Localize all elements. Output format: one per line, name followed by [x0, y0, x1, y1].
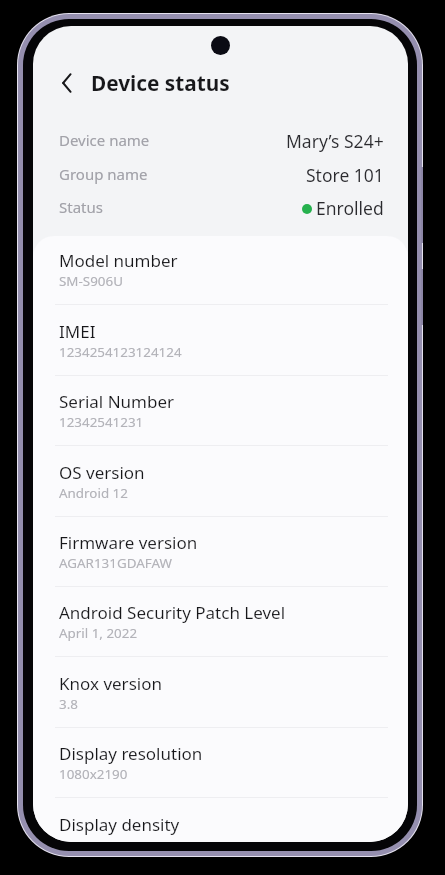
staticText: Serial Number [59, 390, 175, 413]
button[interactable]: IMEI [33, 320, 408, 390]
staticText: Store 101 [306, 163, 384, 187]
staticText: Device name [59, 130, 150, 150]
button[interactable]: Status [33, 193, 408, 221]
button[interactable]: Display density [33, 813, 408, 842]
button[interactable]: Serial Number [33, 390, 408, 460]
button[interactable]: Android Security Patch Level [33, 601, 408, 671]
staticText: Android Security Patch Level [59, 601, 286, 624]
staticText: Display resolution [59, 742, 203, 765]
staticText: Display density [59, 813, 180, 836]
staticText: AGAR131GDAFAW [59, 554, 172, 572]
staticText: 3.8 [59, 695, 78, 713]
button[interactable]: Firmware version [33, 531, 408, 601]
button[interactable]: Display resolution [33, 742, 408, 812]
staticText: Status [59, 197, 103, 217]
staticText: 1234254123124124 [59, 343, 182, 361]
button[interactable]: Device name [33, 126, 408, 154]
staticText: Mary’s S24+ [286, 129, 384, 153]
staticText: Enrolled [316, 196, 384, 220]
staticText: IMEI [59, 320, 96, 343]
button[interactable]: OS version [33, 461, 408, 531]
button[interactable]: Model number [33, 249, 408, 319]
staticText: Firmware version [59, 531, 198, 554]
staticText: Group name [59, 164, 148, 184]
button[interactable]: Group name [33, 160, 408, 188]
staticText: Knox version [59, 672, 162, 695]
button[interactable]: Back [47, 63, 87, 103]
staticText: 1080x2190 [59, 765, 128, 783]
button[interactable]: Knox version [33, 672, 408, 742]
staticText: Android 12 [59, 484, 128, 502]
staticText: Model number [59, 249, 178, 272]
staticText: SM-S906U [59, 272, 123, 290]
staticText: 12342541231 [59, 413, 144, 431]
staticText: OS version [59, 461, 145, 484]
staticText: Device status [91, 69, 230, 97]
staticText: April 1, 2022 [59, 624, 138, 642]
